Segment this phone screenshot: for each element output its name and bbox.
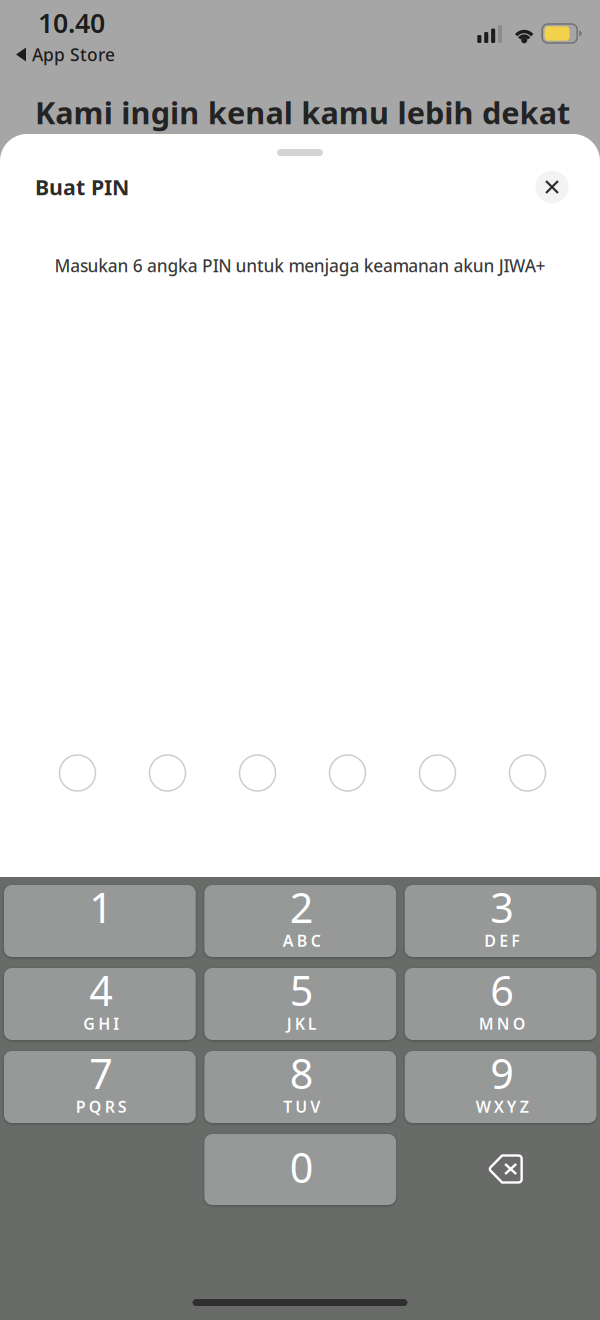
button[interactable]: Close xyxy=(532,167,572,207)
staticText: Masukan 6 angka PIN untuk menjaga keaman… xyxy=(55,254,545,277)
button[interactable]: 5 xyxy=(204,968,396,1040)
button[interactable]: 9 xyxy=(405,1051,596,1123)
button[interactable]: 8 xyxy=(204,1051,396,1123)
staticText: MNO xyxy=(479,1013,526,1034)
staticText: 7 xyxy=(89,1046,113,1100)
button[interactable]: 0 xyxy=(204,1134,396,1205)
staticText: App Store xyxy=(32,43,115,66)
button[interactable]: Delete xyxy=(405,1134,596,1205)
staticText: 5 xyxy=(290,963,314,1017)
staticText: TUV xyxy=(283,1096,320,1117)
staticText: WXYZ xyxy=(476,1096,529,1117)
button[interactable]: 6 xyxy=(405,968,596,1040)
button[interactable]: 2 xyxy=(204,885,396,957)
staticText: 6 xyxy=(490,963,514,1017)
button[interactable]: App Store xyxy=(0,43,115,72)
staticText: GHI xyxy=(83,1013,119,1034)
staticText: JKL xyxy=(287,1013,317,1034)
staticText: 2 xyxy=(290,880,314,934)
staticText: Buat PIN xyxy=(35,173,129,201)
staticText: 8 xyxy=(290,1046,314,1100)
staticText: 4 xyxy=(89,963,113,1017)
button[interactable]: 1 xyxy=(4,885,196,957)
staticText: ABC xyxy=(283,930,321,951)
staticText: Kami ingin kenal kamu lebih dekat xyxy=(35,92,570,133)
staticText: 10.40 xyxy=(38,5,105,40)
button[interactable]: 3 xyxy=(405,885,596,957)
button[interactable]: 7 xyxy=(4,1051,196,1123)
staticText: PQRS xyxy=(76,1096,127,1117)
staticText: 0 xyxy=(290,1140,314,1194)
staticText: DEF xyxy=(484,930,520,951)
button[interactable]: 4 xyxy=(4,968,196,1040)
staticText: 1 xyxy=(89,880,113,934)
staticText: 9 xyxy=(490,1046,514,1100)
staticText: 3 xyxy=(490,880,514,934)
